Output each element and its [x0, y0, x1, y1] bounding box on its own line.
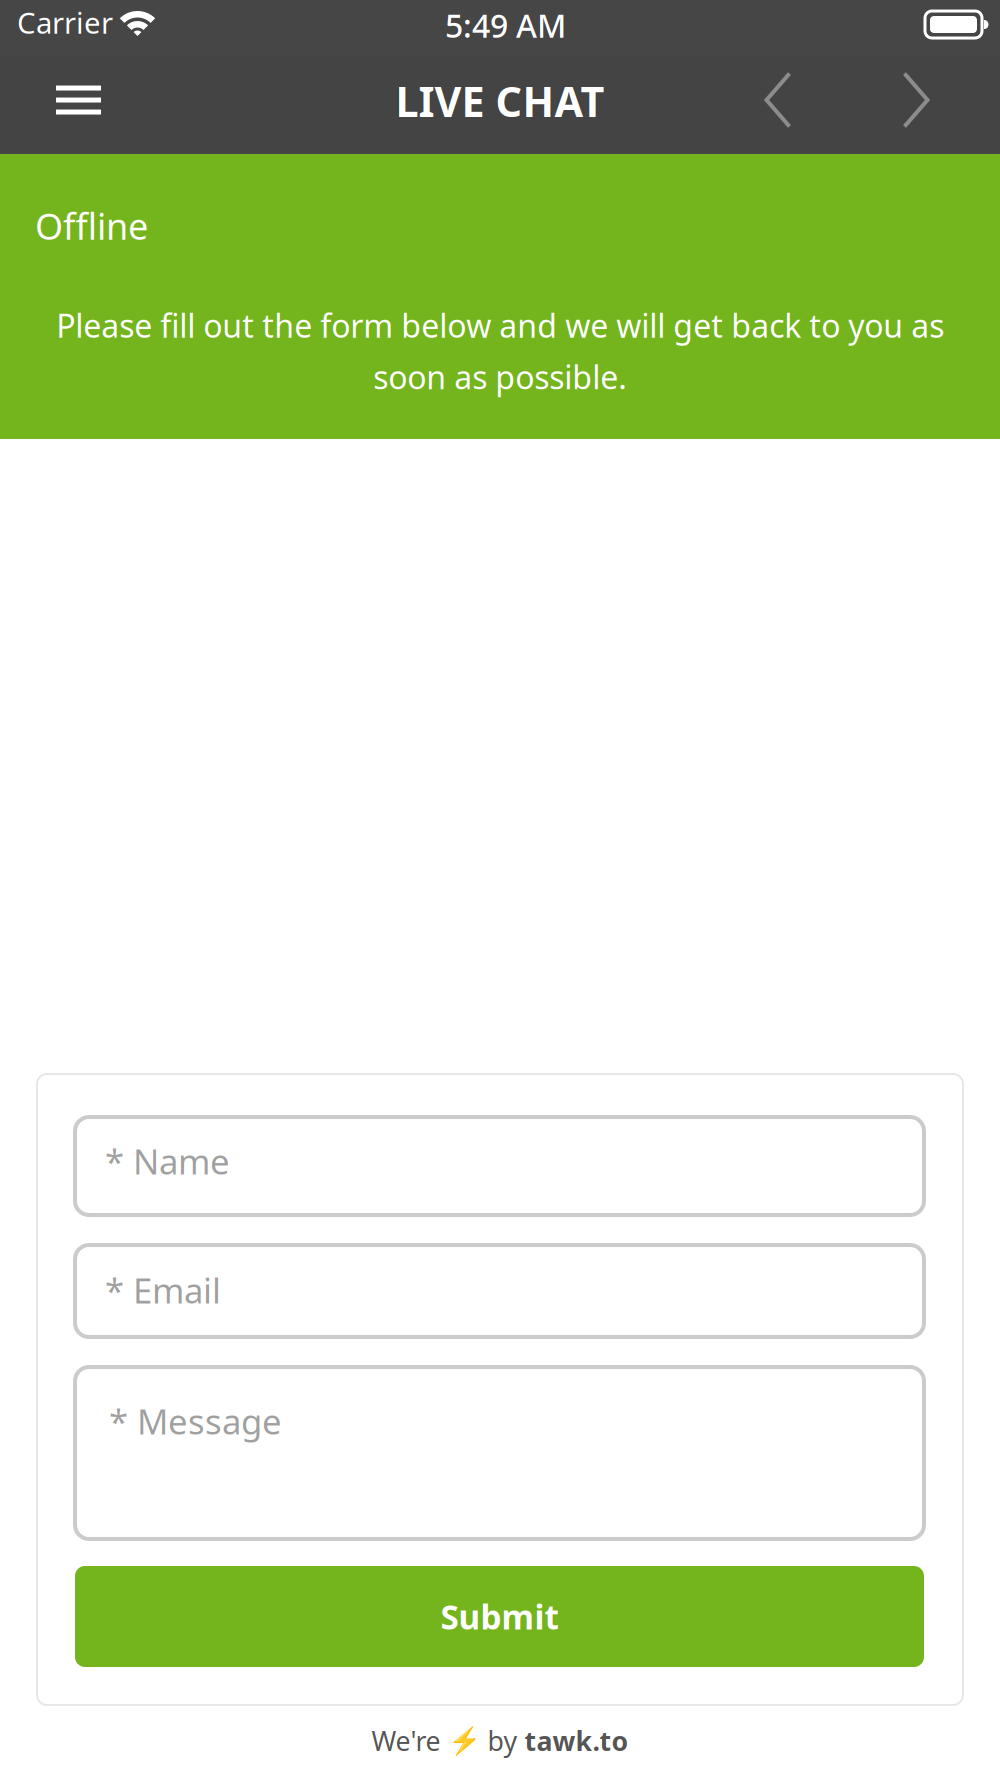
staticText: * Message [109, 1398, 282, 1444]
button[interactable]: Back [742, 51, 814, 149]
button[interactable]: Menu [34, 51, 123, 149]
staticText: * Email [105, 1267, 221, 1313]
staticText: ⚡ [447, 1725, 480, 1756]
staticText: LIVE CHAT [395, 74, 604, 128]
staticText: * Name [105, 1138, 230, 1184]
staticText: We're [371, 1723, 447, 1758]
staticText: 5:49 AM [445, 4, 566, 46]
button[interactable]: Submit [75, 1566, 924, 1667]
staticText: Carrier [17, 3, 113, 42]
staticText: Submit [440, 1594, 558, 1639]
staticText: Offline [35, 202, 148, 250]
button[interactable]: Name, required [75, 1117, 924, 1215]
button[interactable]: Email, required [75, 1245, 924, 1337]
staticText: Please fill out the form below and we wi… [56, 304, 944, 398]
button[interactable]: Message, required [75, 1367, 924, 1539]
staticText: tawk.to [524, 1723, 628, 1758]
staticText: by [480, 1723, 524, 1758]
button[interactable]: Forward [880, 51, 952, 149]
